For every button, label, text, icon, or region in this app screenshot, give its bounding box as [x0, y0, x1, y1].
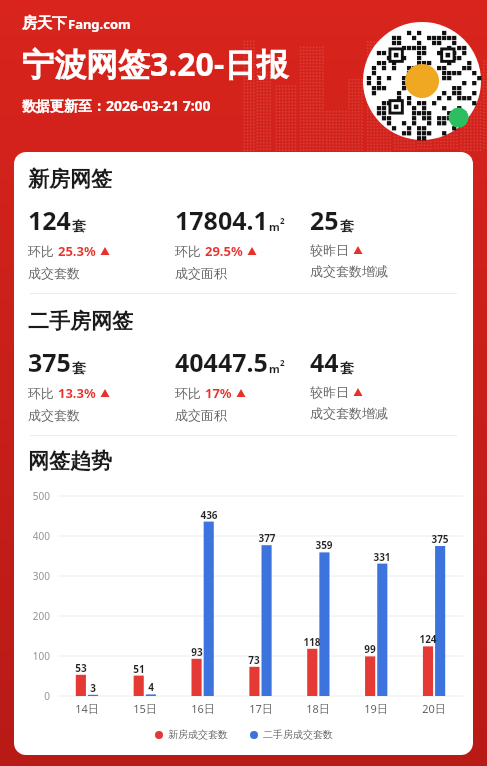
button[interactable]: 124: [28, 203, 175, 281]
button[interactable]: 扫码关注公众号: [363, 22, 481, 140]
staticText: 53: [65, 661, 97, 675]
button[interactable]: 二手房成交套数: [250, 728, 333, 741]
staticText: 套: [72, 360, 86, 378]
staticText: m: [269, 361, 280, 376]
staticText: 51: [123, 662, 155, 676]
staticText: 14日: [65, 701, 109, 716]
staticText: 环比: [175, 384, 205, 402]
staticText: 200: [20, 609, 50, 623]
staticText: 成交套数: [28, 265, 80, 281]
staticText: 436: [193, 508, 225, 522]
staticText: 成交套数增减: [310, 263, 388, 279]
staticText: 93: [181, 645, 213, 659]
staticText: 新房网签: [28, 166, 112, 192]
staticText: 100: [20, 649, 50, 663]
staticText: 400: [20, 529, 50, 543]
staticText: 99: [354, 642, 386, 656]
staticText: 40447.5: [175, 345, 268, 379]
staticText: 500: [20, 489, 50, 503]
button[interactable]: 17804.1: [175, 203, 310, 281]
staticText: 377: [251, 531, 283, 545]
staticText: 环比: [28, 384, 58, 402]
staticText: 29.5%: [205, 242, 243, 260]
button[interactable]: 40447.5: [175, 345, 310, 423]
staticText: 375: [424, 532, 456, 546]
staticText: 13.3%: [58, 384, 96, 402]
staticText: 44: [310, 345, 339, 379]
staticText: 118: [296, 635, 328, 649]
staticText: 20日: [412, 701, 456, 716]
staticText: 17日: [239, 701, 283, 716]
staticText: 2: [280, 215, 285, 226]
staticText: 套: [340, 218, 354, 236]
staticText: 套: [72, 218, 86, 236]
staticText: m: [269, 219, 280, 234]
staticText: 成交面积: [175, 407, 227, 423]
staticText: 16日: [181, 701, 225, 716]
staticText: 环比: [175, 242, 205, 260]
staticText: 套: [340, 360, 354, 378]
staticText: 新房成交套数: [168, 728, 228, 741]
button[interactable]: 25: [310, 203, 473, 279]
button[interactable]: 新房成交套数: [155, 728, 228, 741]
staticText: 15日: [123, 701, 167, 716]
staticText: 2: [280, 357, 285, 368]
staticText: 二手房成交套数: [263, 728, 333, 741]
staticText: 成交套数: [28, 407, 80, 423]
staticText: 18日: [296, 701, 340, 716]
staticText: 375: [28, 345, 71, 379]
staticText: 数据更新至：2026-03-21 7:00: [22, 96, 211, 115]
staticText: 0: [20, 689, 50, 703]
staticText: 宁波网签3.20-日报: [22, 42, 289, 86]
staticText: 网签趋势: [28, 448, 112, 474]
staticText: 较昨日: [310, 242, 349, 258]
button[interactable]: 44: [310, 345, 473, 421]
staticText: 3: [77, 681, 109, 695]
staticText: 房天下: [22, 14, 67, 33]
staticText: 25.3%: [58, 242, 96, 260]
staticText: 成交套数增减: [310, 405, 388, 421]
staticText: 124: [28, 203, 71, 237]
staticText: 17804.1: [175, 203, 268, 237]
staticText: 73: [238, 653, 270, 667]
staticText: 359: [308, 538, 340, 552]
button[interactable]: 375: [28, 345, 175, 423]
staticText: 4: [135, 680, 167, 694]
staticText: 17%: [205, 384, 232, 402]
staticText: 二手房网签: [28, 308, 133, 334]
staticText: 成交面积: [175, 265, 227, 281]
staticText: 19日: [354, 701, 398, 716]
staticText: 较昨日: [310, 384, 349, 400]
staticText: Fang.com: [68, 15, 131, 33]
staticText: 环比: [28, 242, 58, 260]
staticText: 25: [310, 203, 339, 237]
staticText: 300: [20, 569, 50, 583]
staticText: 124: [412, 632, 444, 646]
staticText: 331: [366, 550, 398, 564]
